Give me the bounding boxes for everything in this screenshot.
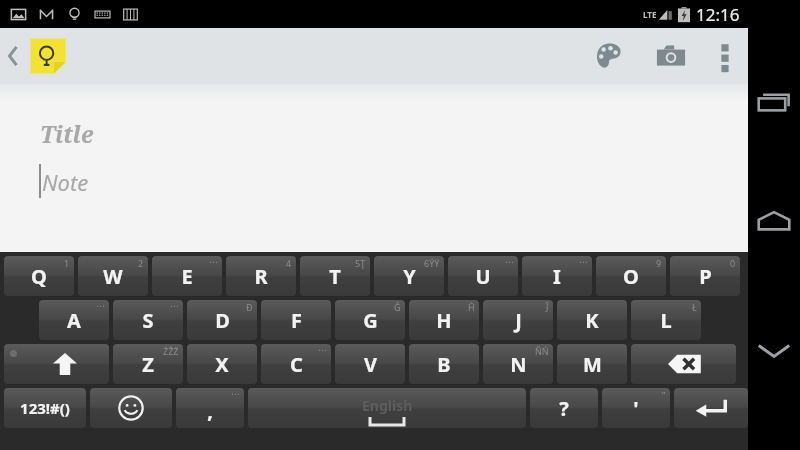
staticText: ? <box>559 395 569 422</box>
staticText: R <box>254 263 268 290</box>
button[interactable]: ? <box>530 388 598 428</box>
button[interactable]: ⋯ <box>39 300 109 340</box>
button[interactable]: Navigate up <box>0 30 76 82</box>
button[interactable]: 123!#() <box>4 388 86 428</box>
staticText: J <box>515 307 522 334</box>
button[interactable]: Ð <box>187 300 257 340</box>
staticText: 0 <box>730 257 736 269</box>
staticText: ÑŃ <box>535 345 549 357</box>
button[interactable]: B <box>409 344 479 384</box>
staticText: E <box>181 263 193 290</box>
button[interactable]: ÑŃ <box>483 344 553 384</box>
button[interactable]: 0 <box>670 256 740 296</box>
button[interactable]: Camera <box>640 28 702 84</box>
staticText: ⋯ <box>231 389 240 399</box>
button[interactable]: Ł <box>631 300 701 340</box>
staticText: Title <box>40 118 94 149</box>
staticText: Ĵ <box>546 301 549 313</box>
staticText: T <box>329 263 341 290</box>
button[interactable]: 6ÝŸ <box>374 256 444 296</box>
button[interactable]: ⋯ <box>152 256 222 296</box>
staticText: Ĝ <box>394 301 401 313</box>
staticText: A <box>67 307 81 334</box>
button[interactable]: Shift <box>4 344 109 384</box>
staticText: M <box>583 351 602 378</box>
button[interactable]: M <box>557 344 627 384</box>
staticText: 4 <box>286 257 292 269</box>
staticText: Ł <box>692 301 697 313</box>
button[interactable]: ” <box>602 388 670 428</box>
button[interactable]: 2 <box>78 256 148 296</box>
button[interactable]: ⋯ <box>176 388 244 428</box>
button[interactable]: Delete <box>631 344 736 384</box>
staticText: B <box>437 351 451 378</box>
staticText: , <box>207 397 213 424</box>
staticText: 2 <box>138 257 144 269</box>
button[interactable]: Title <box>0 84 748 252</box>
staticText: S <box>142 307 154 334</box>
button[interactable]: F <box>261 300 331 340</box>
staticText: H <box>436 307 452 334</box>
staticText: ” <box>662 389 666 401</box>
button[interactable]: X <box>187 344 257 384</box>
button[interactable]: V <box>335 344 405 384</box>
button[interactable]: Color <box>578 28 640 84</box>
staticText: X <box>215 351 229 378</box>
staticText: 1 <box>64 257 70 269</box>
staticText: ŹŽŻ <box>163 345 179 357</box>
staticText: English <box>362 396 413 415</box>
staticText: V <box>364 351 377 378</box>
button[interactable]: Home <box>748 198 800 244</box>
button[interactable]: ŹŽŻ <box>113 344 183 384</box>
staticText: P <box>699 263 712 290</box>
button[interactable]: Ĵ <box>483 300 553 340</box>
staticText: U <box>475 263 491 290</box>
staticText: W <box>103 263 123 290</box>
staticText: ' <box>633 395 639 422</box>
staticText: ⋯ <box>170 301 179 311</box>
button[interactable]: 5Ţ <box>300 256 370 296</box>
staticText: O <box>623 263 639 290</box>
button[interactable]: Emoji <box>90 388 172 428</box>
staticText: Q <box>31 263 47 290</box>
button[interactable]: Enter <box>674 388 748 428</box>
button[interactable]: ⋯ <box>113 300 183 340</box>
staticText: ⋯ <box>318 345 327 355</box>
staticText: N <box>510 351 527 378</box>
staticText: Ð <box>246 301 253 313</box>
button[interactable]: Hide keyboard <box>748 328 800 374</box>
staticText: 6ÝŸ <box>424 257 440 269</box>
staticText: 12:16 <box>696 3 740 26</box>
staticText: Z <box>142 351 154 378</box>
button[interactable]: Recent apps <box>748 78 800 124</box>
staticText: 5Ţ <box>355 257 366 269</box>
staticText: ⋯ <box>96 301 105 311</box>
button[interactable]: 9 <box>596 256 666 296</box>
staticText: ⋯ <box>579 257 588 267</box>
staticText: 9 <box>656 257 662 269</box>
staticText: Y <box>403 263 416 290</box>
staticText: I <box>553 263 561 290</box>
button[interactable]: Ĥ <box>409 300 479 340</box>
button[interactable]: K <box>557 300 627 340</box>
staticText: D <box>215 307 230 334</box>
staticText: Ĥ <box>468 301 475 313</box>
button[interactable]: ⋯ <box>448 256 518 296</box>
button[interactable]: ⋯ <box>261 344 331 384</box>
staticText: 123!#() <box>20 398 70 418</box>
button[interactable]: Ĝ <box>335 300 405 340</box>
staticText: ⋯ <box>505 257 514 267</box>
button[interactable]: ⋯ <box>522 256 592 296</box>
staticText: Note <box>42 167 89 197</box>
staticText: C <box>290 351 303 378</box>
button[interactable]: 1 <box>4 256 74 296</box>
staticText: ⋯ <box>209 257 218 267</box>
button[interactable]: Space <box>248 388 526 428</box>
button[interactable]: More options <box>702 28 748 84</box>
staticText: K <box>585 307 599 334</box>
staticText: G <box>363 307 378 334</box>
staticText: F <box>291 307 302 334</box>
staticText: L <box>660 307 672 334</box>
staticText: LTE <box>643 9 657 20</box>
button[interactable]: 4 <box>226 256 296 296</box>
